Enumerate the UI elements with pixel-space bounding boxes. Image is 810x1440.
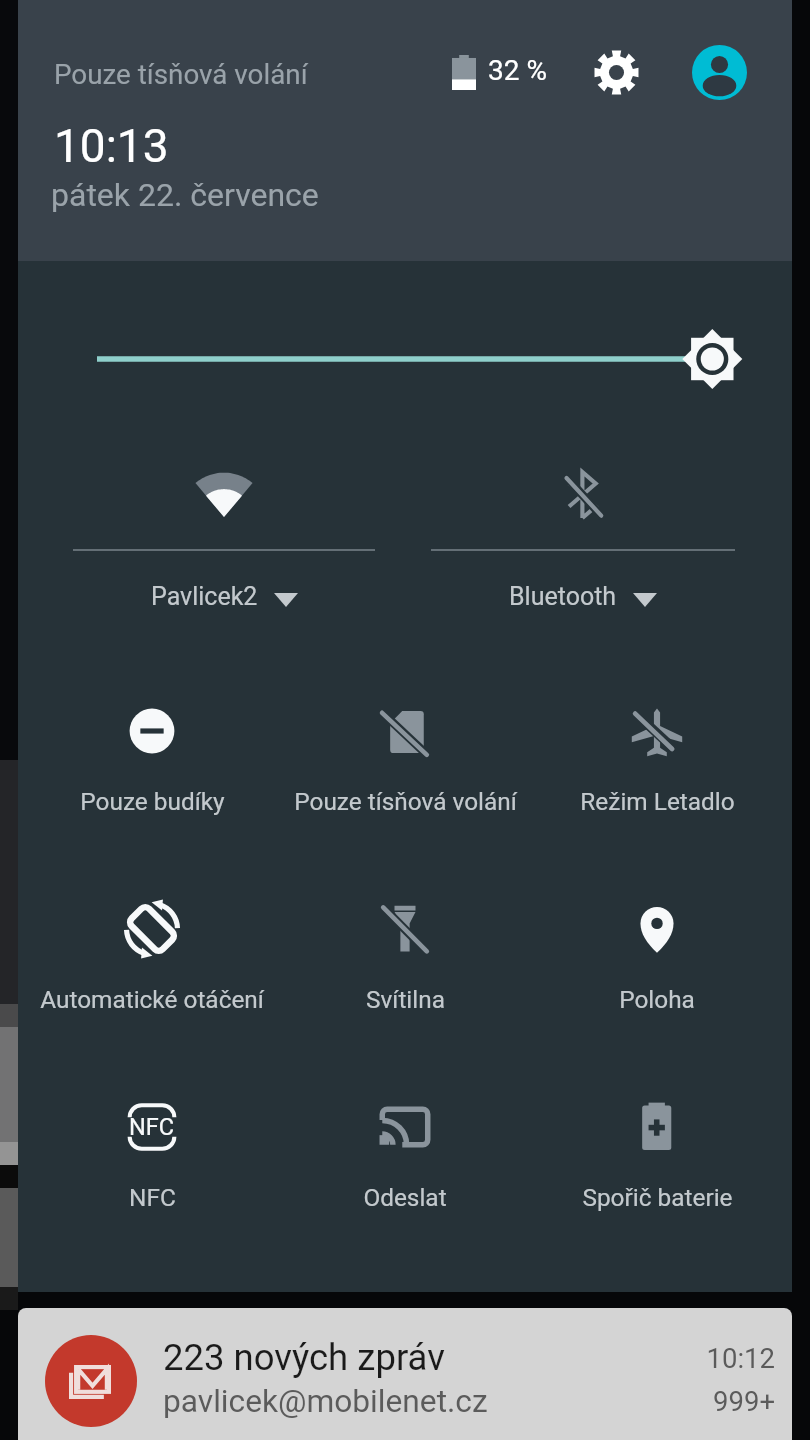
staticText: 223 nových zpráv [163,1336,445,1379]
staticText: Pouze budíky [80,787,225,816]
button[interactable] [279,1071,531,1221]
staticText: Automatické otáčení [40,985,264,1014]
button[interactable]: NFC [26,1071,278,1221]
button[interactable]: User profile [692,45,747,100]
staticText: pavlicek@mobilenet.cz [163,1383,488,1420]
staticText: Pouze tísňová volání [294,787,517,816]
staticText: Bluetooth [509,582,617,611]
staticText: Pouze tísňová volání [54,58,308,91]
button[interactable] [531,1071,783,1221]
button[interactable] [279,873,531,1023]
button[interactable] [26,675,278,825]
staticText: 10:13 [54,119,169,173]
staticText: 10:12 [473,1342,775,1374]
button[interactable]: 223 nových zpráv [18,1308,792,1440]
staticText: Spořič baterie [582,1183,733,1212]
staticText: NFC [129,1113,175,1141]
staticText: 32 % [488,54,547,87]
button[interactable] [279,675,531,825]
button[interactable]: Settings [588,44,644,100]
staticText: Režim Letadlo [580,787,735,816]
button[interactable] [531,675,783,825]
staticText: 999+ [473,1385,775,1417]
button[interactable] [531,873,783,1023]
staticText: pátek 22. července [51,176,319,214]
staticText: Poloha [619,985,695,1014]
staticText: Pavlicek2 [151,582,258,611]
staticText: Svítilna [366,985,445,1014]
button[interactable] [405,420,792,630]
button[interactable] [26,873,278,1023]
staticText: Odeslat [363,1183,447,1212]
staticText: NFC [129,1183,176,1212]
button[interactable]: Brightness [78,314,758,404]
button[interactable] [18,420,405,630]
